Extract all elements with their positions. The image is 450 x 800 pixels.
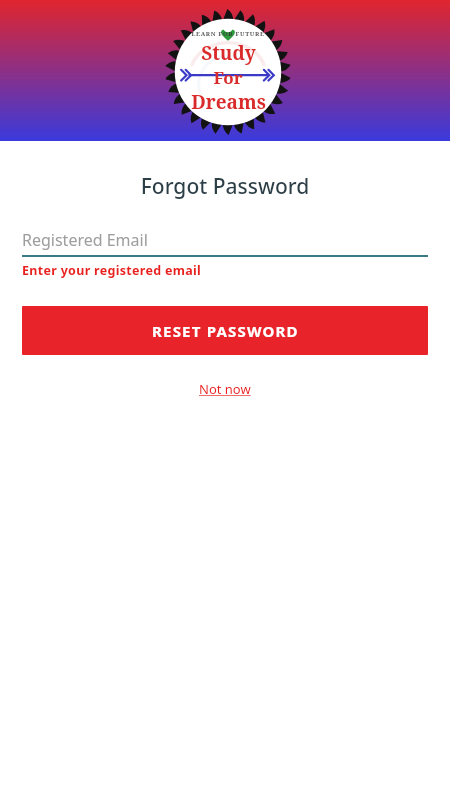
button[interactable]: Not now [191,377,259,401]
button[interactable]: RESET PASSWORD [22,306,428,355]
staticText: Enter your registered email [22,262,202,279]
staticText: Not now [199,380,251,398]
staticText: Study [201,40,256,66]
staticText: RESET PASSWORD [152,321,299,341]
staticText: For [213,66,243,89]
button[interactable]: Registered Email [22,224,428,255]
staticText: Registered Email [22,229,148,251]
staticText: Dreams [191,89,266,115]
staticText: Forgot Password [0,172,450,201]
staticText: LEARN FOR FUTURE [191,30,265,38]
